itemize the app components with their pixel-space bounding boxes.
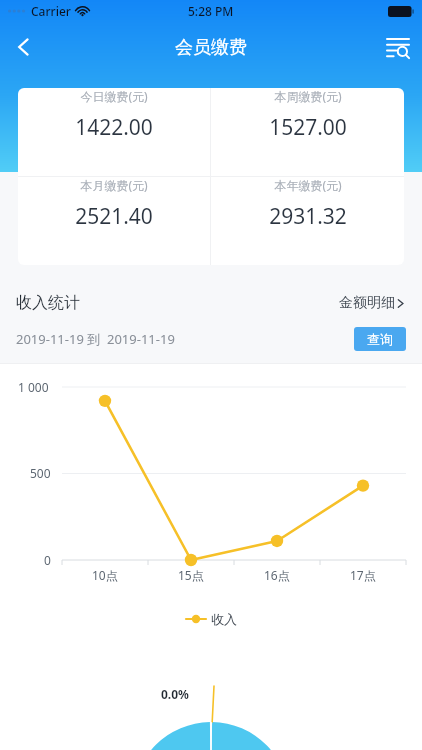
button[interactable]: 2019-11-19 到 2019-11-19 bbox=[16, 330, 175, 348]
staticText: 10点 bbox=[92, 567, 118, 583]
staticText: 会员缴费 bbox=[175, 36, 247, 59]
staticText: 查询 bbox=[367, 331, 393, 347]
button[interactable]: 本年缴费(元) bbox=[211, 177, 404, 231]
staticText: 1 000 bbox=[18, 379, 49, 395]
button[interactable]: 本月缴费(元) bbox=[18, 177, 210, 231]
button[interactable]: 本周缴费(元) bbox=[211, 88, 404, 142]
button[interactable]: 金额明细 bbox=[339, 294, 406, 312]
staticText: 15点 bbox=[178, 567, 204, 583]
button[interactable]: Search list bbox=[374, 23, 422, 71]
staticText: 17点 bbox=[350, 567, 376, 583]
staticText: 本月缴费(元) bbox=[80, 177, 148, 193]
staticText: 5:28 PM bbox=[188, 3, 234, 19]
staticText: 1422.00 bbox=[75, 113, 153, 142]
staticText: Carrier bbox=[31, 3, 71, 19]
staticText: 500 bbox=[30, 465, 51, 481]
staticText: 金额明细 bbox=[339, 294, 395, 312]
staticText: 16点 bbox=[264, 567, 290, 583]
staticText: 1527.00 bbox=[269, 113, 347, 142]
button[interactable]: Back bbox=[0, 23, 48, 71]
staticText: 今日缴费(元) bbox=[80, 88, 148, 104]
staticText: 收入 bbox=[211, 611, 237, 627]
staticText: 0 bbox=[44, 552, 51, 568]
staticText: 本年缴费(元) bbox=[274, 177, 342, 193]
staticText: 本周缴费(元) bbox=[274, 88, 342, 104]
staticText: 0.0% bbox=[161, 686, 189, 702]
button[interactable]: 今日缴费(元) bbox=[18, 88, 210, 142]
staticText: 2931.32 bbox=[269, 202, 347, 231]
button[interactable]: 查询 bbox=[354, 327, 406, 351]
staticText: 2521.40 bbox=[75, 202, 153, 231]
staticText: 收入统计 bbox=[16, 293, 80, 313]
